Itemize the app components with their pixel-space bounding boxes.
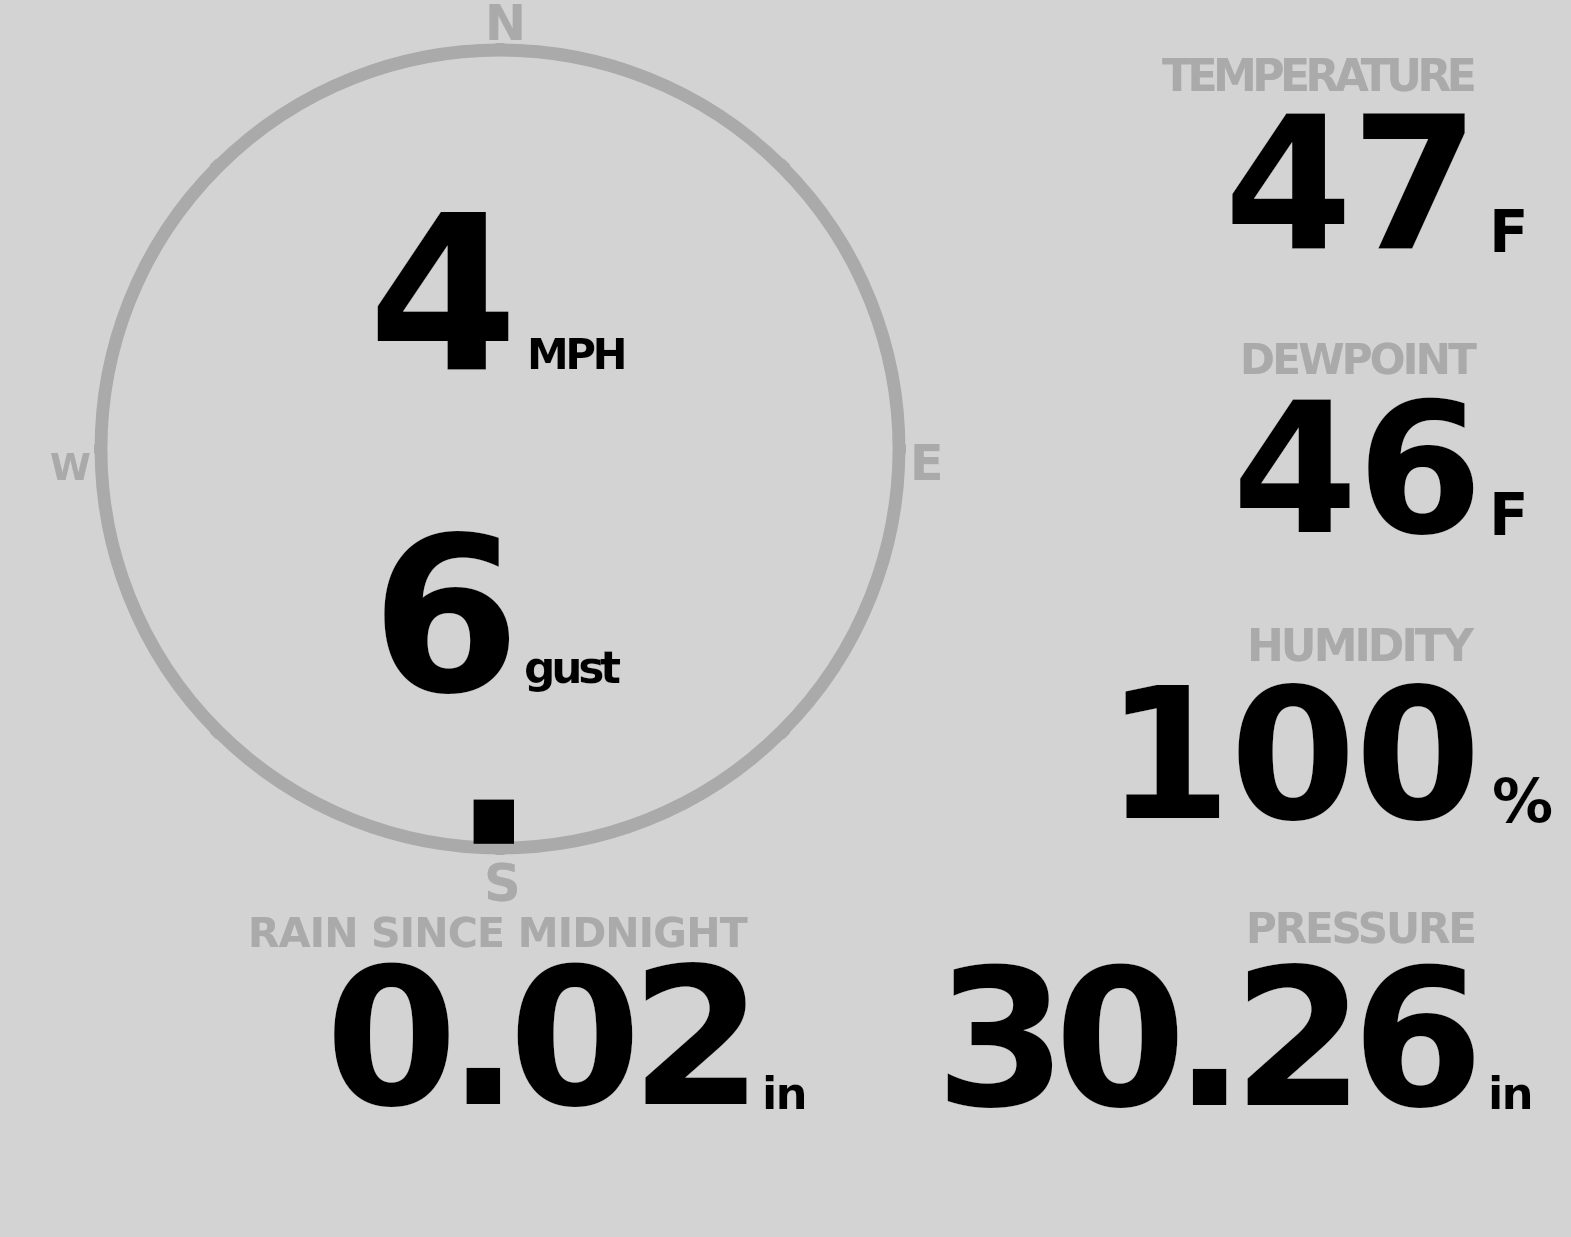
staticText: W <box>50 446 91 489</box>
staticText: TEMPERATURE <box>1162 50 1473 101</box>
button[interactable]: Temperature 47 degrees Fahrenheit <box>1110 44 1560 259</box>
staticText: in <box>1488 1067 1532 1119</box>
staticText: 6 <box>371 491 521 741</box>
staticText: 30.26 <box>935 929 1471 1150</box>
staticText: E <box>910 435 944 492</box>
staticText: % <box>1492 765 1554 836</box>
staticText: 100 <box>1105 649 1480 861</box>
staticText: RAIN SINCE MIDNIGHT <box>248 909 747 957</box>
staticText: 47 <box>1224 77 1478 292</box>
staticText: S <box>484 854 521 913</box>
staticText: F <box>1489 481 1529 549</box>
staticText: gust <box>524 642 617 693</box>
staticText: N <box>485 0 527 52</box>
button[interactable]: Wind 4 miles per hour, gusting 6, from t… <box>96 46 904 854</box>
button[interactable]: Pressure 30.26 inches <box>930 898 1560 1113</box>
button[interactable]: Humidity 100 percent <box>1110 614 1560 829</box>
staticText: MPH <box>527 330 625 379</box>
staticText: DEWPOINT <box>1240 335 1475 384</box>
staticText: 4 <box>368 170 519 421</box>
staticText: F <box>1489 198 1529 266</box>
staticText: 46 <box>1232 364 1482 575</box>
button[interactable]: Rain since midnight 0.02 inches <box>240 903 820 1113</box>
staticText: HUMIDITY <box>1247 620 1471 671</box>
staticText: 0.02 <box>325 927 753 1149</box>
staticText: in <box>762 1067 806 1119</box>
staticText: PRESSURE <box>1246 904 1475 953</box>
button[interactable]: Dew point 46 degrees Fahrenheit <box>1110 329 1560 544</box>
